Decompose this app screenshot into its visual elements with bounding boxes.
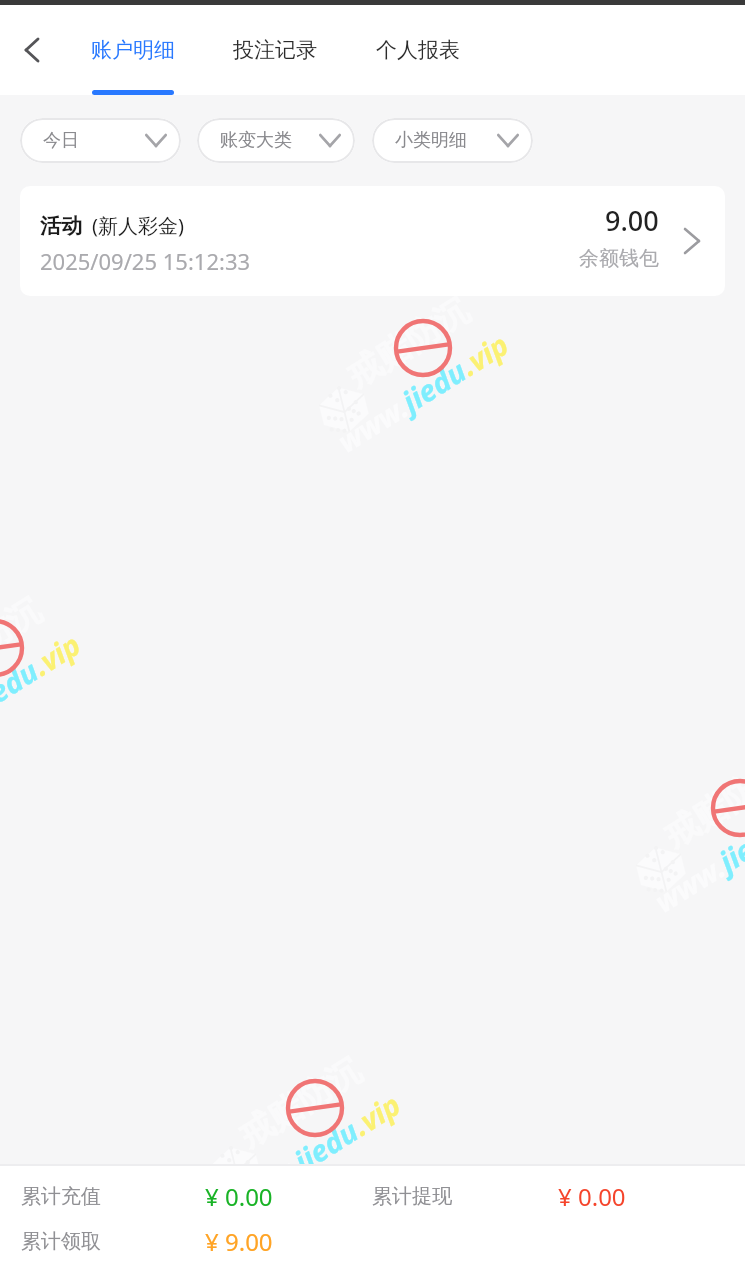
button[interactable]: 账变大类	[197, 118, 355, 163]
staticText: 累计充值	[21, 1184, 205, 1209]
button[interactable]: 活动	[20, 186, 725, 296]
staticText: 投注记录	[233, 37, 317, 63]
staticText: 累计领取	[21, 1229, 205, 1254]
staticText: 累计提现	[372, 1184, 558, 1209]
staticText: 余额钱包	[579, 246, 659, 271]
button[interactable]: Back	[8, 26, 56, 74]
staticText: 9.00	[605, 202, 659, 239]
staticText: 账户明细	[91, 37, 175, 63]
staticText: ¥ 9.00	[205, 1225, 273, 1258]
staticText: ¥ 0.00	[558, 1180, 626, 1213]
button[interactable]: 小类明细	[372, 118, 533, 163]
staticText: 2025/09/25 15:12:33	[40, 246, 251, 276]
staticText: 账变大类	[220, 129, 292, 152]
staticText: (新人彩金)	[92, 212, 184, 239]
staticText: 小类明细	[395, 129, 467, 152]
staticText: 活动	[40, 213, 82, 239]
button[interactable]: 账户明细	[91, 5, 175, 95]
button[interactable]: 投注记录	[233, 5, 317, 90]
staticText: 今日	[43, 129, 79, 152]
staticText: 个人报表	[376, 37, 460, 63]
staticText: ¥ 0.00	[205, 1180, 372, 1213]
button[interactable]: 个人报表	[376, 5, 460, 90]
button[interactable]: 今日	[20, 118, 181, 163]
